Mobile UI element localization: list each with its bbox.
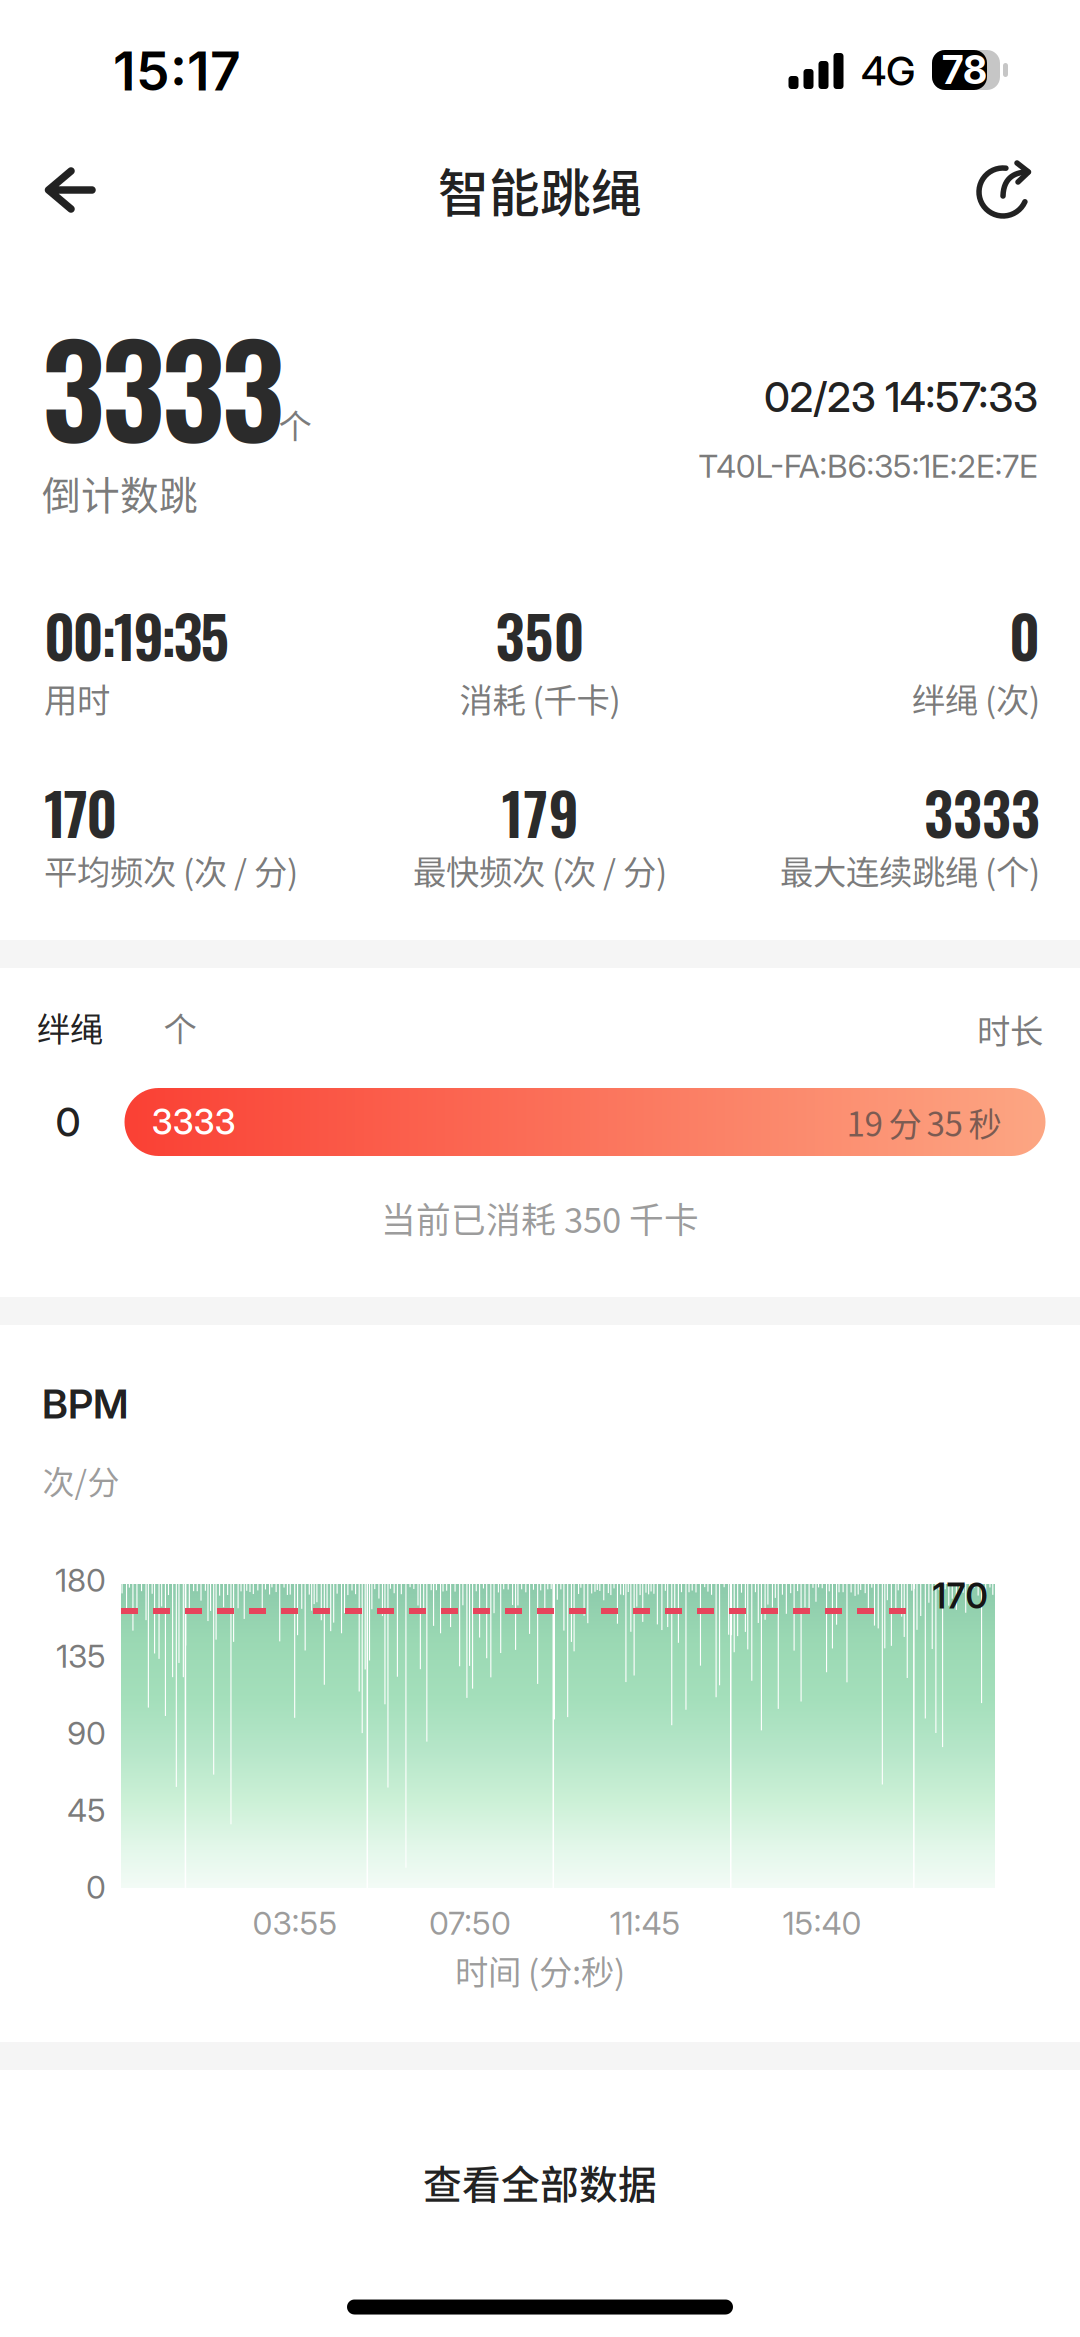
- staticText: 3333: [151, 1101, 235, 1143]
- button[interactable]: Share: [949, 135, 1059, 245]
- staticText: 15:40: [782, 1904, 861, 1942]
- staticText: 179: [501, 769, 578, 854]
- staticText: 0: [86, 1868, 106, 1906]
- staticText: 查看全部数据: [423, 2154, 657, 2210]
- staticText: 0: [1009, 592, 1040, 677]
- staticText: 170: [44, 769, 117, 854]
- staticText: 最快频次 (次 / 分): [413, 846, 667, 894]
- staticText: 19 分 35 秒: [846, 1098, 1001, 1146]
- staticText: 用时: [44, 674, 110, 722]
- staticText: 4G: [861, 47, 915, 95]
- staticText: 350: [495, 592, 584, 677]
- staticText: 00:19:35: [44, 592, 229, 677]
- staticText: 绊绳 (次): [912, 674, 1040, 722]
- staticText: T40L-FA:B6:35:1E:2E:7E: [698, 447, 1038, 485]
- staticText: 03:55: [252, 1904, 337, 1942]
- staticText: 平均频次 (次 / 分): [44, 846, 298, 894]
- staticText: 45: [67, 1791, 106, 1829]
- staticText: 3333: [924, 769, 1040, 854]
- staticText: 次/分: [42, 1457, 119, 1503]
- staticText: 个: [278, 400, 311, 448]
- staticText: 90: [67, 1714, 106, 1752]
- staticText: 78: [942, 47, 987, 93]
- staticText: 07:50: [429, 1904, 511, 1942]
- staticText: 倒计数跳: [42, 465, 198, 521]
- staticText: 时长: [977, 1005, 1043, 1053]
- staticText: 消耗 (千卡): [459, 674, 620, 722]
- staticText: 最大连续跳绳 (个): [780, 846, 1040, 894]
- staticText: 170: [932, 1575, 987, 1617]
- staticText: 3333: [42, 292, 284, 478]
- button[interactable]: 查看全部数据: [0, 2107, 1080, 2257]
- staticText: 0: [55, 1098, 80, 1146]
- staticText: 个: [163, 1003, 196, 1051]
- staticText: BPM: [42, 1380, 128, 1428]
- staticText: 02/23 14:57:33: [764, 372, 1038, 422]
- staticText: 当前已消耗 350 千卡: [381, 1193, 699, 1243]
- staticText: 135: [56, 1637, 106, 1675]
- staticText: 绊绳: [37, 1003, 103, 1051]
- button[interactable]: Back: [15, 135, 125, 245]
- staticText: 15:17: [113, 39, 241, 103]
- staticText: 180: [55, 1561, 106, 1599]
- staticText: 智能跳绳: [438, 153, 642, 227]
- staticText: 11:45: [609, 1904, 680, 1942]
- staticText: 时间 (分:秒): [455, 1946, 625, 1994]
